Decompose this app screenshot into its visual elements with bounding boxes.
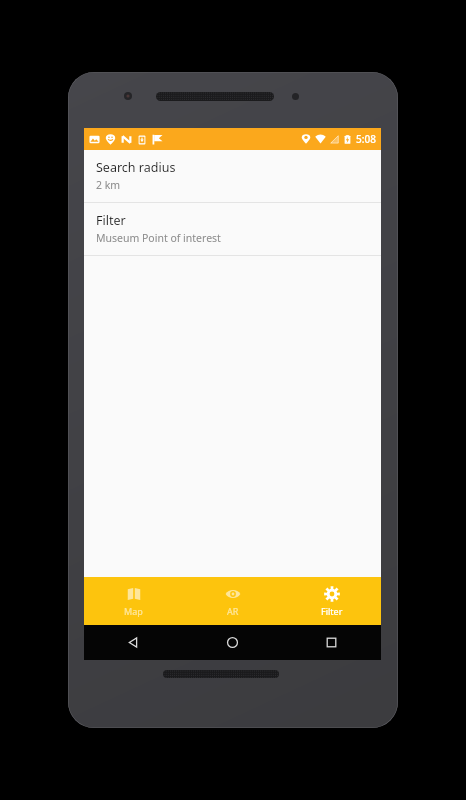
staticText: 5:08 [356,132,376,146]
button[interactable]: Back [84,625,183,660]
staticText: Museum Point of interest [96,231,221,245]
staticText: Search radius [96,159,176,176]
button[interactable]: Search radius [84,150,381,202]
staticText: Map [124,605,143,617]
button[interactable]: Map [84,577,183,625]
button[interactable]: Home [183,625,282,660]
staticText: Filter [96,212,126,229]
button[interactable]: Filter [282,577,381,625]
staticText: 2 km [96,178,121,192]
button[interactable]: AR [183,577,282,625]
button[interactable]: Filter [84,203,381,255]
staticText: AR [227,605,239,617]
button[interactable]: Recent apps [282,625,381,660]
staticText: Filter [321,605,343,617]
